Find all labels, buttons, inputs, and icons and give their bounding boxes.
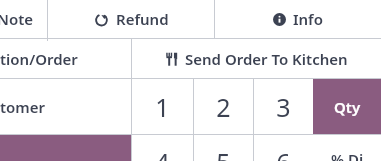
staticText: 2 bbox=[216, 90, 231, 124]
button[interactable]: Send Order To Kitchen bbox=[132, 39, 381, 78]
button[interactable]: 4 bbox=[132, 135, 193, 161]
button[interactable]: 1 bbox=[132, 79, 193, 134]
button[interactable]: Info bbox=[215, 0, 381, 38]
button[interactable]: Note bbox=[0, 0, 47, 38]
button[interactable]: 5 bbox=[194, 135, 253, 161]
staticText: Info bbox=[293, 9, 323, 29]
staticText: Refund bbox=[116, 9, 169, 29]
staticText: Note bbox=[0, 9, 34, 29]
button[interactable]: 2 bbox=[194, 79, 253, 134]
button[interactable]: tion/Order bbox=[0, 39, 131, 78]
button[interactable]: Refund bbox=[48, 0, 214, 38]
button[interactable]: 3 bbox=[254, 79, 313, 134]
staticText: tomer bbox=[0, 97, 46, 117]
staticText: tion/Order bbox=[0, 49, 78, 69]
button[interactable]: Qty bbox=[313, 79, 381, 134]
button[interactable]: % Di bbox=[313, 135, 381, 161]
staticText: 5 bbox=[216, 145, 231, 161]
staticText: 1 bbox=[155, 90, 170, 124]
staticText: % Di bbox=[331, 149, 364, 161]
staticText: 4 bbox=[155, 145, 170, 161]
staticText: 6 bbox=[276, 145, 291, 161]
staticText: Qty bbox=[334, 97, 361, 117]
button[interactable]: 6 bbox=[254, 135, 313, 161]
staticText: Send Order To Kitchen bbox=[185, 49, 348, 69]
staticText: 3 bbox=[276, 90, 291, 124]
button[interactable]: tomer bbox=[0, 79, 131, 134]
